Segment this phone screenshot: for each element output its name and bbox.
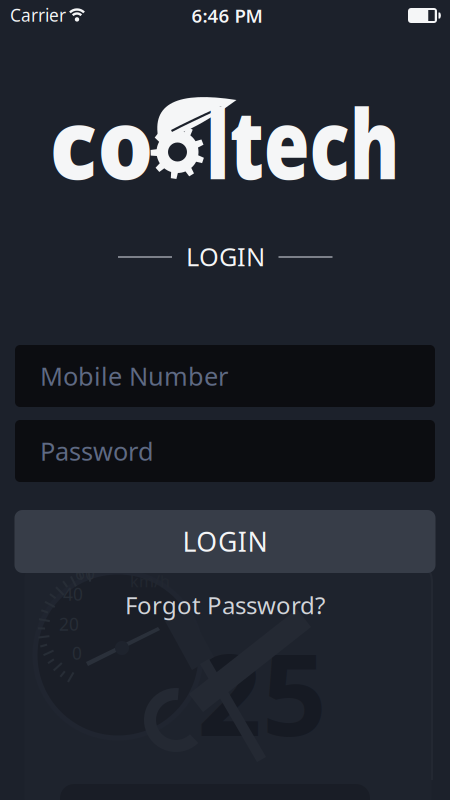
staticText: LOGIN (182, 524, 268, 559)
staticText: km/h (130, 570, 170, 592)
staticText: 60 (75, 561, 95, 584)
staticText: 25 (197, 617, 327, 767)
staticText: co (45, 78, 158, 206)
button[interactable]: Password (15, 420, 435, 482)
staticText: Carrier (10, 3, 66, 26)
staticText: 20 (59, 612, 79, 635)
staticText: 6:46 PM (191, 3, 262, 28)
staticText: ltech (177, 78, 427, 206)
staticText: Mobile Number (40, 359, 228, 393)
staticText: Password (40, 434, 154, 468)
staticText: Forgot Password? (125, 589, 325, 621)
button[interactable]: Mobile Number (15, 345, 435, 407)
staticText: 0 (72, 641, 82, 664)
staticText: LOGIN (186, 240, 265, 273)
button[interactable]: LOGIN (14, 510, 435, 573)
button[interactable]: Forgot Password? (125, 589, 325, 621)
staticText: 40 (63, 582, 83, 605)
